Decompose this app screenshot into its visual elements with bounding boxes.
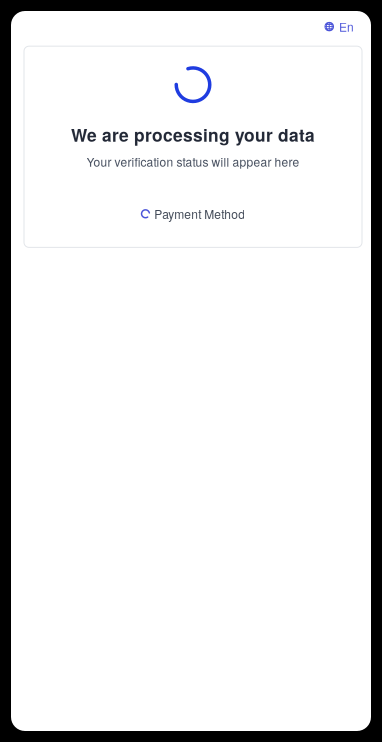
staticText: Payment Method <box>154 205 245 222</box>
button[interactable]: Payment Method <box>141 205 245 222</box>
staticText: We are processing your data <box>71 122 315 147</box>
button[interactable]: Language: English <box>320 14 358 39</box>
staticText: Your verification status will appear her… <box>86 153 299 170</box>
staticText: En <box>339 18 354 35</box>
